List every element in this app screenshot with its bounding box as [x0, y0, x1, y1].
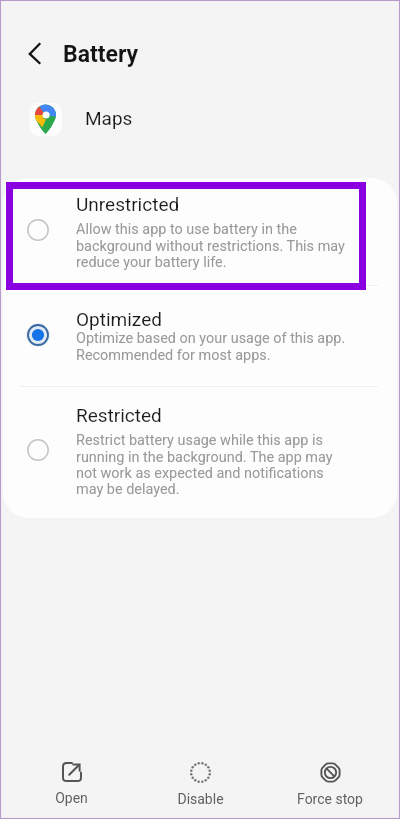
button[interactable] — [0, 180, 400, 280]
staticText: Optimized — [76, 308, 162, 330]
staticText: Unrestricted — [76, 193, 180, 215]
button[interactable]: Back — [16, 30, 54, 68]
staticText: Open — [55, 790, 88, 806]
staticText: Force stop — [297, 791, 363, 807]
staticText: Restricted — [76, 404, 162, 426]
staticText: Optimize based on your usage of this app… — [76, 330, 350, 363]
button[interactable]: Force stop — [284, 752, 376, 812]
button[interactable] — [0, 96, 400, 144]
staticText: Maps — [85, 107, 133, 129]
staticText: Disable — [177, 791, 224, 807]
staticText: Battery — [63, 41, 139, 68]
button[interactable] — [0, 392, 400, 507]
button[interactable] — [0, 291, 400, 367]
staticText: Allow this app to use battery in the bac… — [76, 221, 350, 270]
staticText: Restrict battery usage while this app is… — [76, 432, 350, 497]
button[interactable]: Open — [25, 752, 117, 812]
button[interactable]: Disable — [154, 752, 246, 812]
